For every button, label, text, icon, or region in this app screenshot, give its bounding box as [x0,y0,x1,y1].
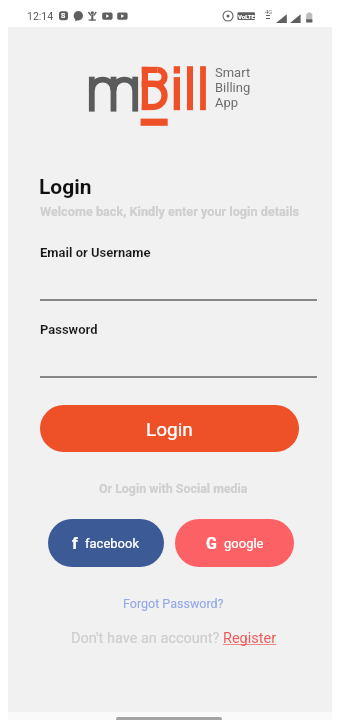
staticText: Login [39,175,92,200]
staticText: Or Login with Social media [99,481,248,496]
button[interactable]: f [48,519,164,567]
staticText: Welcome back, Kindly enter your login de… [40,204,300,219]
staticText: VoLTE [238,13,255,20]
staticText: Smart [215,65,251,80]
staticText: 4G [265,8,273,15]
staticText: facebook [85,536,140,551]
staticText: google [224,536,264,551]
staticText: Login [146,418,193,440]
button[interactable]: Register [223,630,277,647]
staticText: f [72,534,78,553]
staticText: S [61,12,66,20]
staticText: Billing [215,80,251,95]
staticText: 12:14 [27,10,54,22]
staticText: Email or Username [40,245,151,260]
staticText: App [215,95,239,110]
button[interactable]: G [175,519,294,567]
staticText: Password [40,322,98,337]
button[interactable]: Forgot Password? [123,596,224,611]
staticText: G [206,534,217,553]
staticText: Don't have an account? [71,630,223,647]
button[interactable]: Login [40,405,299,452]
